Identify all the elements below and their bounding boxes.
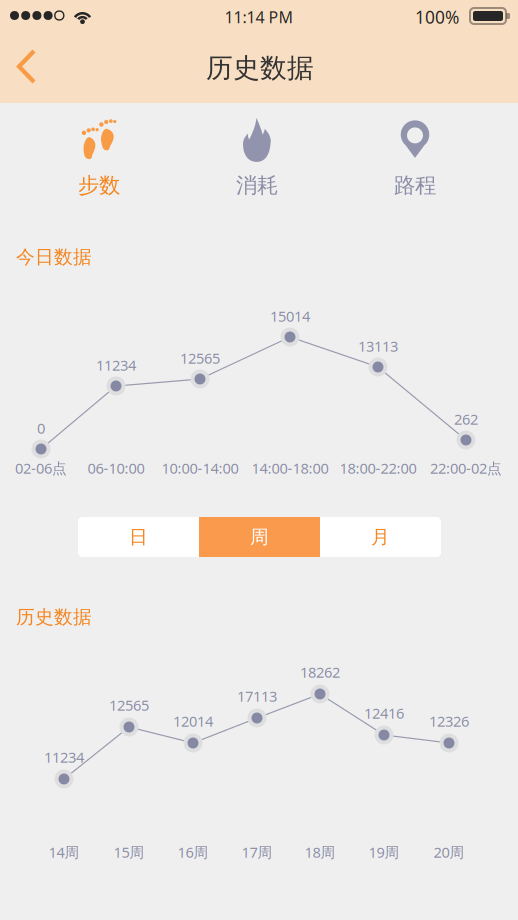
staticText: 262: [454, 409, 478, 429]
staticText: 14周: [48, 842, 79, 862]
staticText: 17113: [237, 686, 277, 706]
button[interactable]: 周: [199, 517, 320, 557]
staticText: 11234: [96, 355, 136, 375]
staticText: 12014: [173, 711, 213, 731]
button[interactable]: 日: [78, 517, 199, 557]
staticText: 12565: [109, 695, 149, 715]
staticText: 月: [371, 525, 390, 548]
staticText: 13113: [358, 336, 398, 356]
staticText: 18262: [300, 662, 340, 682]
staticText: 路程: [394, 172, 436, 199]
staticText: 06-10:00: [87, 458, 144, 478]
staticText: 10:00-14:00: [161, 458, 238, 478]
staticText: 步数: [78, 172, 120, 199]
staticText: 22:00-02点: [430, 458, 502, 478]
staticText: 消耗: [236, 172, 278, 199]
staticText: 20周: [433, 842, 464, 862]
staticText: 今日数据: [16, 245, 92, 268]
staticText: 02-06点: [15, 458, 67, 478]
staticText: 18:00-22:00: [339, 458, 416, 478]
staticText: 历史数据: [16, 605, 92, 628]
staticText: 18周: [304, 842, 335, 862]
staticText: 15014: [270, 306, 310, 326]
staticText: 19周: [368, 842, 399, 862]
button[interactable]: 路程: [336, 117, 494, 199]
button[interactable]: Back: [12, 40, 58, 93]
staticText: 14:00-18:00: [251, 458, 328, 478]
staticText: 周: [250, 525, 269, 548]
button[interactable]: 消耗: [178, 117, 336, 199]
staticText: 11:14 PM: [224, 6, 293, 28]
staticText: 11234: [44, 747, 84, 767]
staticText: 12326: [429, 711, 469, 731]
staticText: 日: [129, 525, 148, 548]
button[interactable]: 月: [320, 517, 441, 557]
staticText: 100%: [415, 5, 459, 28]
staticText: 17周: [241, 842, 272, 862]
staticText: 0: [37, 418, 45, 438]
staticText: 12565: [180, 348, 220, 368]
staticText: 15周: [113, 842, 144, 862]
button[interactable]: 步数: [20, 117, 178, 199]
staticText: 16周: [177, 842, 208, 862]
staticText: 历史数据: [206, 52, 314, 84]
staticText: 12416: [364, 703, 404, 723]
